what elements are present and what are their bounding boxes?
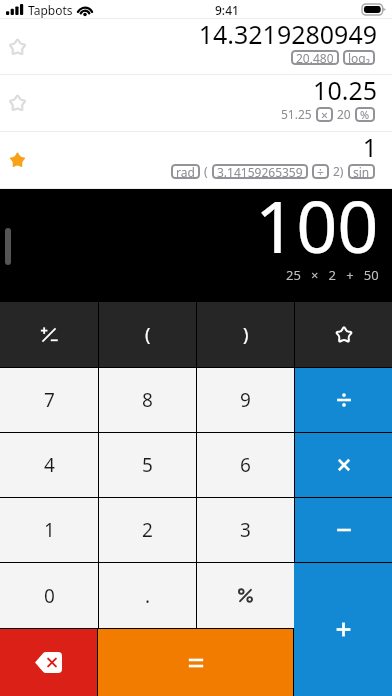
staticText: 100 (255, 176, 379, 274)
staticText: 5 (142, 452, 153, 478)
staticText: 6 (240, 452, 251, 478)
button[interactable]: Favorite (8, 94, 27, 113)
button[interactable]: 1 (0, 132, 392, 189)
staticText: 1 (44, 517, 55, 543)
button[interactable]: 5 (99, 433, 196, 497)
button[interactable]: Favorite (295, 302, 392, 367)
staticText: 3 (240, 517, 251, 543)
staticText: ) (243, 322, 249, 347)
staticText: % (360, 107, 370, 122)
staticText: sin (353, 164, 370, 179)
button[interactable]: 14.3219280949 (0, 19, 392, 75)
button[interactable]: 7 (0, 368, 98, 432)
button[interactable]: 4 (0, 433, 98, 497)
button[interactable]: Favorite (8, 151, 27, 170)
staticText: ÷ (317, 164, 324, 179)
button[interactable]: Divide (295, 368, 392, 432)
staticText: 10.25 (313, 73, 377, 107)
button[interactable]: 2 (99, 498, 196, 562)
staticText: 9 (240, 387, 251, 413)
button[interactable]: Favorite (8, 38, 27, 57)
staticText: 0 (44, 583, 55, 609)
staticText: 25 × 2 + 50 (286, 266, 379, 281)
button[interactable]: Multiply (295, 433, 392, 497)
staticText: 20,480 (296, 50, 334, 65)
button[interactable]: Equals (98, 629, 293, 696)
staticText: ( (204, 163, 208, 179)
button[interactable]: . (99, 563, 196, 628)
staticText: 51.25 (281, 106, 312, 122)
button[interactable]: Delete (0, 629, 97, 696)
staticText: Tapbots (28, 2, 73, 18)
button[interactable]: 3 (197, 498, 294, 562)
staticText: 2) (333, 163, 344, 179)
staticText: 4 (44, 452, 55, 478)
staticText: × (321, 107, 328, 122)
button[interactable]: 6 (197, 433, 294, 497)
staticText: 1 (362, 130, 377, 164)
staticText: 3.14159265359 (217, 164, 303, 179)
button[interactable]: 10.25 (0, 75, 392, 132)
button[interactable]: 8 (99, 368, 196, 432)
staticText: 8 (142, 387, 153, 413)
button[interactable]: ) (197, 302, 294, 367)
staticText: 2 (142, 517, 153, 543)
staticText: 7 (44, 387, 55, 413)
staticText: 14.3219280949 (198, 17, 377, 51)
button[interactable]: 1 (0, 498, 98, 562)
staticText: log₂ (348, 50, 370, 65)
button[interactable] (197, 563, 294, 628)
button[interactable]: ( (99, 302, 196, 367)
button[interactable]: Plus minus (0, 302, 98, 367)
button[interactable]: Minus (295, 498, 392, 562)
button[interactable]: 9 (197, 368, 294, 432)
button[interactable] (294, 563, 392, 696)
staticText: rad (176, 164, 195, 179)
staticText: 20 (337, 106, 351, 122)
button[interactable]: 0 (0, 563, 98, 628)
staticText: . (145, 583, 151, 609)
staticText: ( (145, 322, 151, 347)
staticText: 9:41 (215, 2, 239, 18)
